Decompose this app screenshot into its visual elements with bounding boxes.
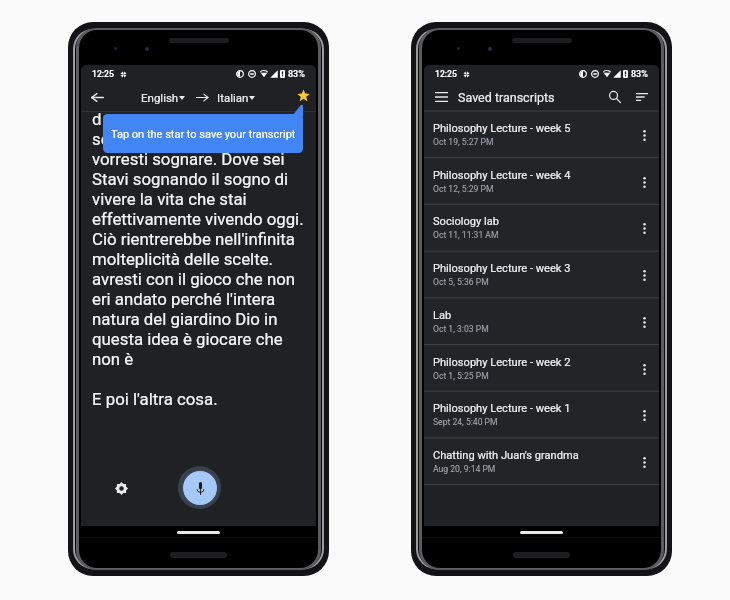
- button[interactable]: Italian: [214, 87, 258, 108]
- staticText: Sociology lab: [433, 215, 499, 228]
- button[interactable]: Record: [178, 466, 221, 509]
- staticText: Oct 19, 5:27 PM: [433, 137, 494, 147]
- staticText: 83%: [631, 69, 648, 80]
- staticText: Chatting with Juan's grandma: [433, 449, 579, 462]
- staticText: Saved transcripts: [458, 90, 555, 105]
- staticText: Sept 24, 5:40 PM: [433, 417, 498, 427]
- staticText: English: [141, 91, 179, 104]
- button[interactable]: Back: [86, 86, 108, 108]
- staticText: Oct 12, 5:29 PM: [433, 184, 494, 194]
- staticText: Philosophy Lecture - week 5: [433, 122, 571, 135]
- button[interactable]: Philosophy Lecture - week 2: [424, 345, 659, 392]
- button[interactable]: Save transcript: [292, 84, 314, 106]
- staticText: Philosophy Lecture - week 3: [433, 262, 571, 275]
- button[interactable]: More options: [634, 312, 654, 332]
- button[interactable]: Sort: [632, 87, 652, 107]
- button[interactable]: Chatting with Juan's grandma: [424, 438, 659, 485]
- button[interactable]: More options: [634, 172, 654, 192]
- staticText: 12:25: [435, 69, 457, 79]
- button[interactable]: More options: [634, 359, 654, 379]
- staticText: Oct 1, 5:25 PM: [433, 371, 489, 381]
- staticText: Oct 5, 5:36 PM: [433, 277, 489, 287]
- staticText: Italian: [217, 91, 249, 104]
- button[interactable]: Philosophy Lecture - week 3: [424, 251, 659, 298]
- staticText: Oct 1, 3:03 PM: [433, 324, 489, 334]
- button[interactable]: Sociology lab: [424, 204, 659, 251]
- button[interactable]: Settings: [110, 477, 132, 499]
- staticText: Aug 20, 9:14 PM: [433, 464, 496, 474]
- button[interactable]: More options: [634, 218, 654, 238]
- staticText: Philosophy Lecture - week 1: [433, 402, 571, 415]
- button[interactable]: More options: [634, 265, 654, 285]
- button[interactable]: Philosophy Lecture - week 5: [424, 111, 659, 158]
- button[interactable]: More options: [634, 405, 654, 425]
- button[interactable]: More options: [634, 452, 654, 472]
- staticText: Tap on the star to save your transcript: [111, 128, 296, 141]
- staticText: Oct 11, 11:31 AM: [433, 230, 499, 240]
- staticText: Lab: [433, 309, 452, 322]
- button[interactable]: More options: [634, 125, 654, 145]
- staticText: d so vorresti sognare. Dove sei Stavi so…: [92, 109, 304, 409]
- button[interactable]: Philosophy Lecture - week 4: [424, 158, 659, 205]
- staticText: Philosophy Lecture - week 4: [433, 169, 571, 182]
- staticText: Philosophy Lecture - week 2: [433, 356, 571, 369]
- button[interactable]: Search: [605, 87, 625, 107]
- button[interactable]: English: [138, 87, 188, 108]
- button[interactable]: Lab: [424, 298, 659, 345]
- staticText: 12:25: [92, 69, 114, 79]
- button[interactable]: Menu: [431, 87, 451, 107]
- button[interactable]: Philosophy Lecture - week 1: [424, 391, 659, 438]
- staticText: 83%: [288, 69, 305, 80]
